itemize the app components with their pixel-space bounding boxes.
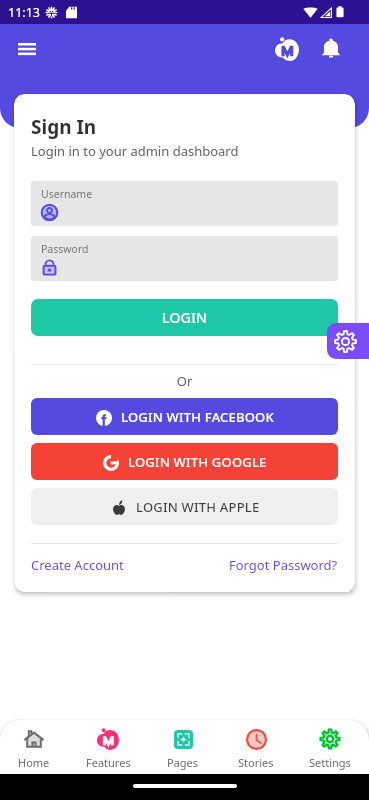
staticText: Home	[18, 755, 50, 770]
button[interactable]: Forgot Password?	[229, 556, 338, 574]
button[interactable]: LOGIN WITH GOOGLE	[31, 443, 338, 480]
staticText: Features	[86, 755, 131, 770]
staticText: LOGIN	[162, 308, 208, 327]
button[interactable]: Home	[1, 720, 67, 774]
staticText: Login in to your admin dashboard	[31, 142, 239, 160]
button[interactable]: Pages	[150, 720, 216, 774]
staticText: 11:13	[8, 4, 40, 21]
button[interactable]: Password	[31, 236, 338, 281]
staticText: Pages	[167, 755, 199, 770]
button[interactable]: Menu	[7, 29, 47, 69]
staticText: LOGIN WITH APPLE	[136, 498, 260, 516]
button[interactable]: Username	[31, 181, 338, 226]
staticText: LOGIN WITH FACEBOOK	[121, 408, 274, 426]
staticText: Password	[41, 242, 89, 256]
button[interactable]: LOGIN	[31, 299, 338, 336]
staticText: Stories	[238, 755, 274, 770]
button[interactable]: Settings	[297, 720, 363, 774]
staticText: Or	[31, 372, 338, 390]
staticText: LOGIN WITH GOOGLE	[128, 453, 267, 471]
staticText: Settings	[309, 755, 351, 770]
button[interactable]: Notifications	[311, 29, 351, 69]
button[interactable]: LOGIN WITH APPLE	[31, 488, 338, 525]
button[interactable]: Features	[75, 720, 141, 774]
button[interactable]: Settings	[327, 323, 369, 359]
staticText: Username	[41, 187, 93, 201]
button[interactable]: LOGIN WITH FACEBOOK	[31, 398, 338, 435]
staticText: Sign In	[31, 114, 97, 140]
button[interactable]: Stories	[223, 720, 289, 774]
button[interactable]: Create Account	[31, 556, 124, 574]
button[interactable]: App logo	[267, 29, 307, 69]
